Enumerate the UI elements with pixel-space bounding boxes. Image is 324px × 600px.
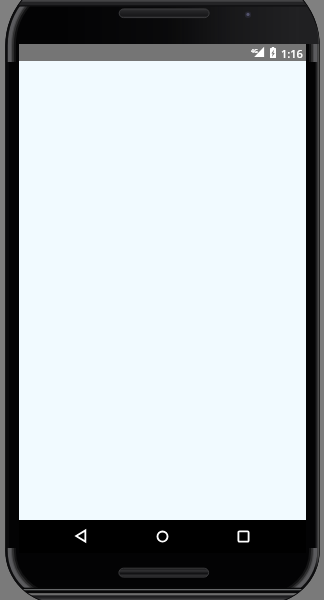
button[interactable]: Home [146, 520, 178, 552]
staticText: 1:16 [281, 46, 303, 61]
staticText: 4G [251, 47, 258, 54]
button[interactable]: Recents [227, 520, 259, 552]
button[interactable]: Back [65, 520, 97, 552]
